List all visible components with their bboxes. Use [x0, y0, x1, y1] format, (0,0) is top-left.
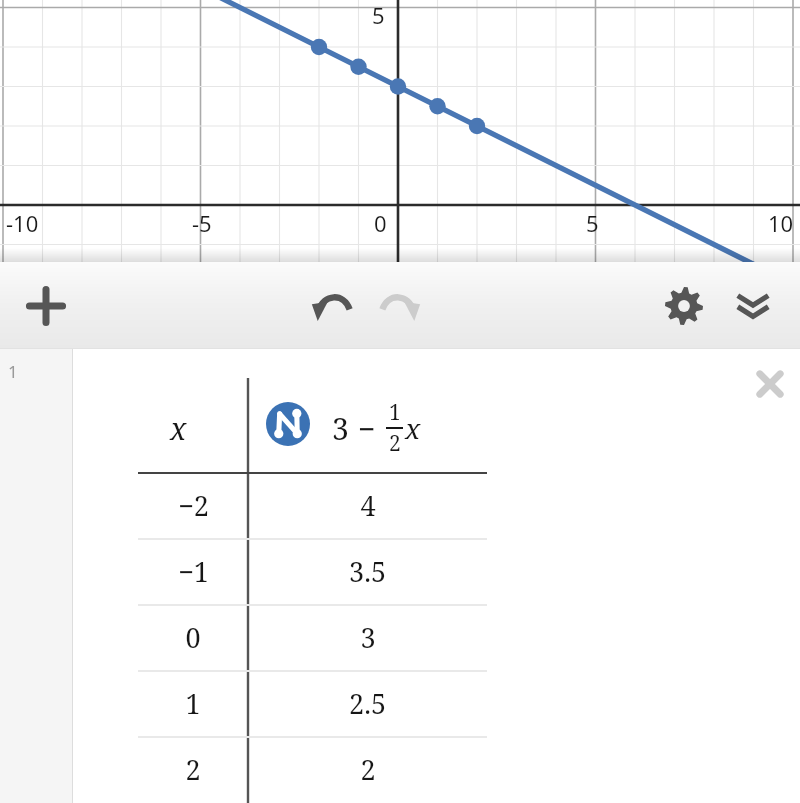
- staticText: 1: [185, 685, 201, 722]
- button[interactable]: 2: [248, 751, 487, 803]
- button[interactable]: Collapse: [725, 278, 781, 334]
- staticText: 1: [389, 398, 401, 427]
- button[interactable]: 3: [248, 619, 487, 685]
- staticText: 3: [332, 408, 349, 449]
- staticText: -10: [6, 208, 39, 238]
- staticText: 1: [8, 360, 18, 383]
- button[interactable]: Settings: [656, 278, 712, 334]
- staticText: 4: [360, 487, 376, 524]
- staticText: 10: [768, 208, 794, 238]
- button[interactable]: 2.5: [248, 685, 487, 751]
- button[interactable]: Undo: [304, 278, 360, 334]
- button[interactable]: −2: [138, 487, 248, 553]
- staticText: 0: [374, 208, 387, 238]
- button[interactable]: Redo: [372, 278, 428, 334]
- staticText: 2: [389, 429, 401, 458]
- staticText: 5: [372, 0, 385, 30]
- button[interactable]: 4: [248, 487, 487, 553]
- staticText: −2: [178, 487, 209, 524]
- staticText: −: [358, 408, 376, 449]
- button[interactable]: Close table: [742, 356, 798, 412]
- staticText: 3.5: [349, 553, 386, 590]
- staticText: x: [170, 408, 187, 449]
- button[interactable]: −1: [138, 553, 248, 619]
- staticText: x: [405, 409, 421, 447]
- staticText: 2: [185, 751, 201, 788]
- button[interactable]: 2: [138, 751, 248, 803]
- button[interactable]: 1: [138, 685, 248, 751]
- staticText: 5: [586, 208, 599, 238]
- button[interactable]: 0: [138, 619, 248, 685]
- staticText: 2.5: [349, 685, 386, 722]
- button[interactable]: Add expression: [18, 278, 74, 334]
- staticText: −1: [178, 553, 209, 590]
- staticText: 0: [185, 619, 201, 656]
- staticText: 3: [360, 619, 376, 656]
- staticText: -5: [192, 208, 212, 238]
- staticText: 2: [360, 751, 376, 788]
- button[interactable]: 3.5: [248, 553, 487, 619]
